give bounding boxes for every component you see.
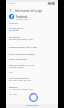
staticText: Ver todo bbox=[9, 93, 18, 96]
staticText: 1,23 GB usados bbox=[9, 66, 24, 69]
button[interactable]: Batería bbox=[6, 84, 58, 91]
staticText: Otras opciones bbox=[9, 57, 27, 60]
staticText: f bbox=[11, 14, 13, 19]
staticText: Datos móviles y Wi‑Fi bbox=[9, 63, 34, 66]
button[interactable]: Almacenamiento bbox=[6, 75, 58, 82]
staticText: Información de la app bbox=[15, 9, 42, 13]
staticText: 3 % desde la última carga bbox=[9, 88, 33, 91]
button[interactable]: Otras opciones bbox=[6, 56, 58, 62]
button[interactable]: Abrir de forma predet. bbox=[6, 51, 58, 57]
staticText: Notificación bbox=[9, 26, 23, 29]
staticText: Abrir de forma predet. bbox=[9, 52, 36, 55]
button[interactable]: Permisos bbox=[6, 34, 58, 41]
staticText: Uso bbox=[9, 71, 13, 74]
staticText: 10:24 bbox=[9, 2, 15, 5]
staticText: Permisos bbox=[9, 35, 20, 38]
button[interactable]: Temporizador de la app bbox=[6, 44, 58, 50]
staticText: Cámara, micrófono y más bbox=[9, 38, 34, 41]
staticText: Batería bbox=[9, 85, 18, 88]
staticText: Versión 452.0 bbox=[16, 18, 29, 21]
staticText: 456 MB usados en total bbox=[9, 79, 31, 82]
staticText: Permitidas bbox=[9, 29, 20, 32]
button[interactable]: Atrás bbox=[7, 7, 14, 14]
button[interactable]: Notificación bbox=[6, 25, 58, 32]
staticText: Temporizador de la app bbox=[9, 45, 37, 48]
staticText: Facebook bbox=[16, 15, 28, 18]
button[interactable]: Datos móviles y Wi‑Fi bbox=[6, 62, 58, 69]
staticText: Almacenamiento bbox=[9, 76, 29, 79]
staticText: Controles bbox=[9, 22, 19, 25]
